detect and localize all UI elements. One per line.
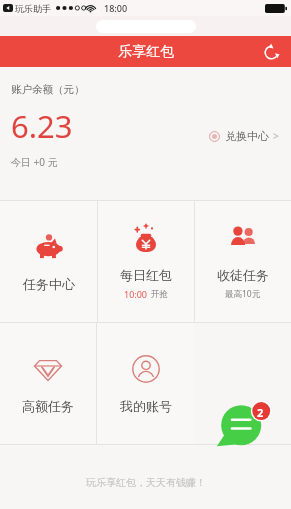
button[interactable]: Refresh [259, 40, 283, 64]
staticText: 我的账号 [120, 398, 172, 414]
staticText: 玩乐助手 [15, 3, 51, 14]
button[interactable]: 高额任务 [0, 323, 96, 444]
button[interactable]: Customer service chat [218, 398, 276, 456]
staticText: 6.23 [11, 105, 73, 147]
staticText: 每日红包 [120, 267, 172, 283]
staticText: 开抢 [151, 289, 168, 300]
staticText: 最高10元 [225, 288, 261, 300]
staticText: 10:00 [124, 288, 148, 300]
staticText: 18:00 [104, 2, 128, 14]
button[interactable]: 兑换中心 [205, 125, 283, 147]
staticText: 高额任务 [22, 398, 74, 414]
button[interactable]: 我的账号 [97, 323, 194, 444]
staticText: 乐享红包 [118, 43, 174, 61]
staticText: 收徒任务 [217, 267, 269, 283]
button[interactable]: 任务中心 [0, 201, 97, 322]
button[interactable]: 每日红包 [98, 201, 194, 322]
staticText: 账户余额（元） [11, 83, 85, 96]
staticText: 兑换中心 [225, 129, 269, 143]
staticText: 任务中心 [23, 276, 75, 292]
staticText: 今日 +0 元 [11, 155, 58, 169]
staticText: 玩乐享红包，天天有钱赚！ [86, 476, 206, 489]
button[interactable]: 收徒任务 [195, 201, 291, 322]
staticText: > [273, 129, 279, 143]
staticText: 2 [257, 405, 264, 420]
